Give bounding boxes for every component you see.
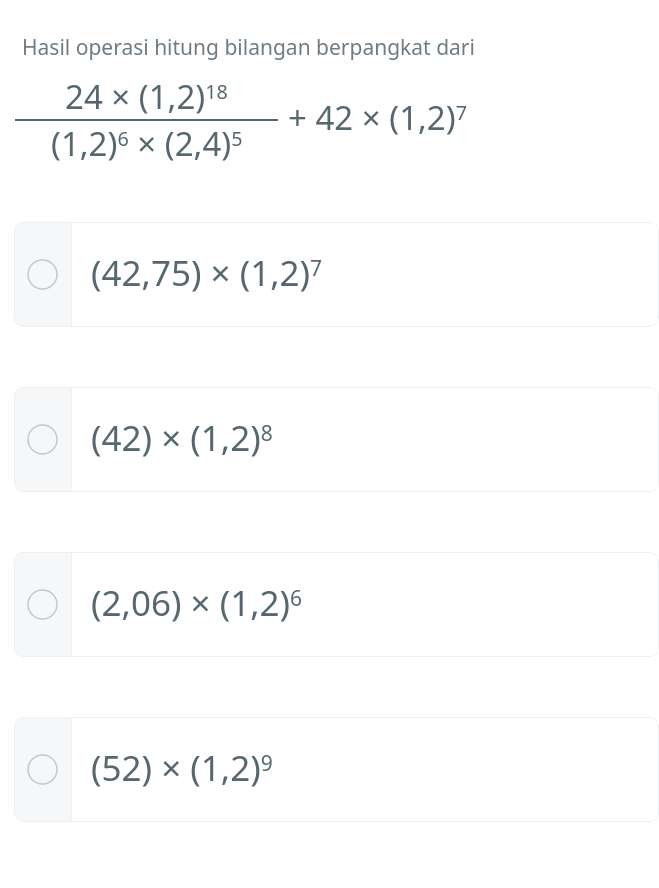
staticText: + 42 × (1,2)7 xyxy=(288,95,467,140)
button[interactable]: (52) × (1,2)9 xyxy=(14,717,659,822)
staticText: (2,06) × (1,2)6 xyxy=(91,579,303,627)
staticText: (42,75) × (1,2)7 xyxy=(91,249,323,297)
staticText: 24 × (1,2)18 xyxy=(65,74,228,119)
button[interactable]: (2,06) × (1,2)6 xyxy=(14,552,659,657)
staticText: (52) × (1,2)9 xyxy=(91,744,273,792)
staticText: (1,2)6 × (2,4)5 xyxy=(51,121,243,166)
button[interactable]: (42,75) × (1,2)7 xyxy=(14,222,659,327)
staticText: (42) × (1,2)8 xyxy=(91,414,273,462)
button[interactable]: (42) × (1,2)8 xyxy=(14,387,659,492)
staticText: Hasil operasi hitung bilangan berpangkat… xyxy=(22,33,475,62)
